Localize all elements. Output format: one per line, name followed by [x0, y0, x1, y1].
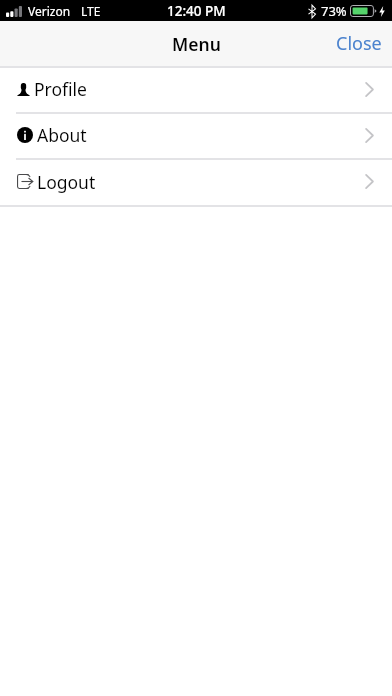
staticText: 12:40 PM: [167, 2, 226, 20]
button[interactable]: About: [0, 114, 392, 158]
button[interactable]: Logout: [0, 160, 392, 205]
button[interactable]: Close: [320, 20, 392, 67]
staticText: About: [37, 123, 87, 147]
staticText: Menu: [172, 32, 221, 56]
staticText: Verizon: [28, 3, 71, 19]
staticText: Close: [336, 31, 382, 56]
staticText: 73%: [321, 2, 347, 20]
staticText: Logout: [37, 170, 96, 194]
staticText: Profile: [34, 77, 87, 101]
button[interactable]: Profile: [0, 68, 392, 112]
staticText: LTE: [81, 3, 101, 19]
